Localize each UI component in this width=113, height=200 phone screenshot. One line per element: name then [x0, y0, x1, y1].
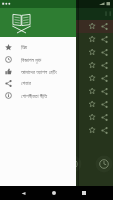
button[interactable]: Share: [101, 88, 108, 95]
staticText: শেয়ার: [21, 81, 31, 86]
button[interactable]: Favourite: [89, 75, 96, 82]
button[interactable]: Share: [101, 114, 108, 121]
staticText: গোপনীয়তা নীতি: [21, 92, 48, 99]
button[interactable]: Favourite: [0, 33, 113, 46]
button[interactable]: Favourite: [89, 114, 96, 121]
button[interactable]: Favourite: [89, 127, 96, 134]
button[interactable]: আমাদের অ্যাপস রেটিং: [0, 65, 76, 77]
button[interactable]: Share: [101, 101, 108, 108]
button[interactable]: Recent apps: [76, 186, 92, 200]
button[interactable]: বিজ্ঞাপন মুক্ত: [0, 53, 76, 65]
button[interactable]: গোপনীয়তা নীতি: [0, 89, 76, 101]
button[interactable]: Favourite: [0, 20, 113, 33]
button[interactable]: Favourite: [0, 46, 113, 59]
button[interactable]: Favourite: [89, 23, 96, 30]
button[interactable]: Share: [101, 36, 108, 43]
staticText: আমাদের অ্যাপস রেটিং: [21, 68, 58, 75]
button[interactable]: Favourite: [89, 62, 96, 69]
button[interactable]: প্রিয়: [0, 41, 76, 53]
button[interactable]: Favourite: [0, 72, 113, 85]
staticText: বিজ্ঞাপন মুক্ত: [21, 56, 42, 63]
button[interactable]: Favourite: [0, 85, 113, 98]
button[interactable]: Favourite: [0, 111, 113, 124]
button[interactable]: Share: [101, 62, 108, 69]
button[interactable]: Share: [101, 127, 108, 134]
button[interactable]: Share: [101, 23, 108, 30]
button[interactable]: Favourite: [89, 49, 96, 56]
button[interactable]: Favourite: [89, 88, 96, 95]
button[interactable]: Favourite: [0, 124, 113, 137]
button[interactable]: Share: [101, 49, 108, 56]
button[interactable]: Favourite: [0, 98, 113, 111]
button[interactable]: Favourite: [89, 36, 96, 43]
button[interactable]: Back: [15, 186, 31, 200]
button[interactable]: শেয়ার: [0, 77, 76, 89]
staticText: প্রিয়: [21, 45, 28, 50]
button[interactable]: Share: [101, 75, 108, 82]
button[interactable]: Home: [46, 186, 62, 200]
button[interactable]: Favourite: [0, 59, 113, 72]
button[interactable]: Favourite: [89, 101, 96, 108]
